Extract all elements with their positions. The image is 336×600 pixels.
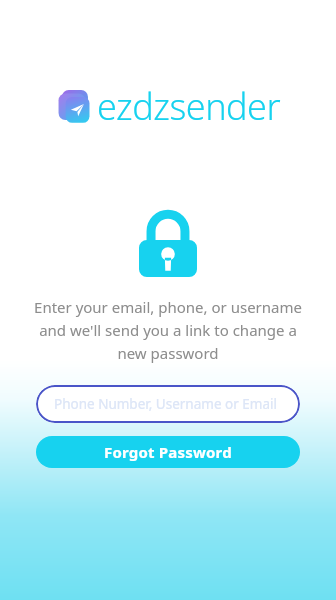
staticText: Enter your email, phone, or username and… (18, 297, 318, 363)
other: Locked (139, 209, 197, 277)
staticText: Phone Number, Username or Email (54, 395, 277, 413)
other: ezdzsender logo (56, 90, 90, 124)
staticText: ezdzsender (97, 82, 281, 131)
button[interactable]: Phone Number, Username or Email (36, 385, 300, 423)
button[interactable]: Forgot Password (36, 436, 300, 468)
staticText: Forgot Password (104, 442, 232, 462)
